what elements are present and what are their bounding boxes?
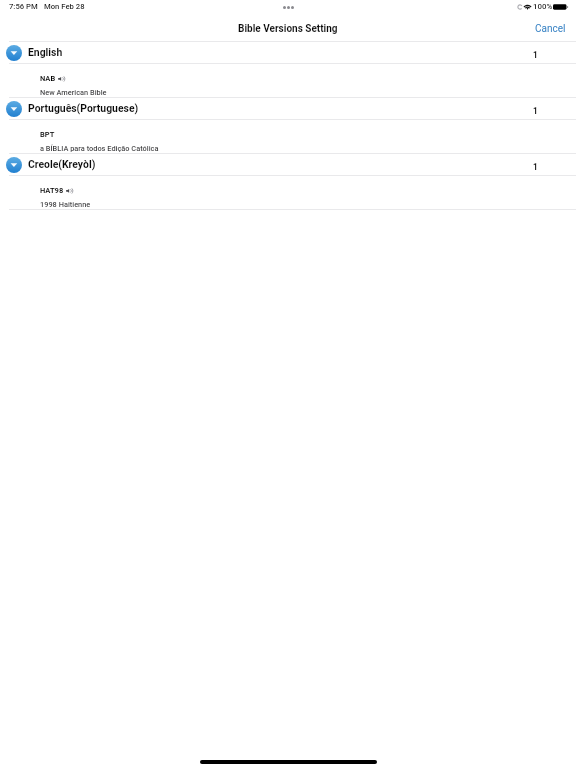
button[interactable]: Collapse section: [0, 154, 576, 175]
staticText: Cancel: [535, 23, 566, 35]
staticText: 1: [533, 162, 538, 172]
staticText: English: [28, 46, 63, 58]
button[interactable]: Play audio for NAB: [58, 76, 65, 82]
staticText: Português(Portuguese): [28, 102, 139, 114]
staticText: Creole(Kreyòl): [28, 158, 96, 170]
staticText: BPT: [40, 130, 55, 139]
staticText: 1: [533, 106, 538, 116]
staticText: 1998 Haitienne: [40, 200, 91, 209]
staticText: Mon Feb 28: [44, 2, 85, 11]
staticText: NAB: [40, 74, 56, 83]
button[interactable]: Play audio for HAT98: [66, 188, 73, 194]
staticText: 7:56 PM: [9, 2, 38, 11]
staticText: 100%: [533, 2, 553, 11]
staticText: a BÍBLIA para todos Edição Católica: [40, 144, 159, 153]
button[interactable]: BPT: [0, 120, 576, 153]
button[interactable]: Collapse section: [0, 42, 576, 63]
staticText: Bible Versions Setting: [238, 23, 338, 35]
other: Collapse section: [6, 157, 22, 173]
staticText: 1: [533, 50, 538, 60]
staticText: New American Bible: [40, 88, 107, 97]
other: Collapse section: [6, 101, 22, 117]
button[interactable]: NAB: [0, 64, 576, 97]
button[interactable]: HAT98: [0, 176, 576, 209]
staticText: HAT98: [40, 186, 64, 195]
other: Collapse section: [6, 45, 22, 61]
button[interactable]: Cancel: [524, 18, 576, 40]
button[interactable]: Collapse section: [0, 98, 576, 119]
